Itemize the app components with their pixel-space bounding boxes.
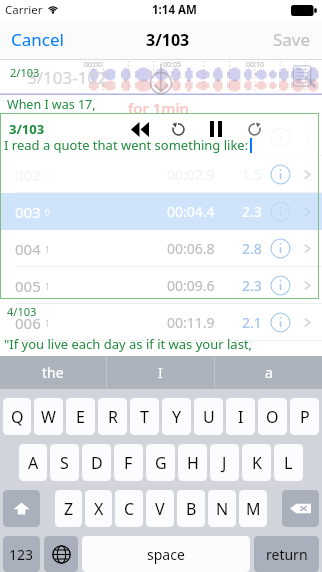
staticText: Cancel bbox=[11, 28, 64, 51]
staticText: D bbox=[91, 452, 103, 474]
button[interactable]: 006 bbox=[0, 304, 322, 341]
staticText: return bbox=[266, 545, 308, 564]
staticText: X bbox=[94, 498, 104, 520]
staticText: R bbox=[108, 406, 118, 428]
staticText: 2/103 bbox=[10, 65, 40, 80]
button[interactable]: W bbox=[34, 398, 63, 435]
button[interactable]: H bbox=[178, 444, 207, 481]
staticText: W bbox=[41, 406, 56, 428]
button[interactable]: L bbox=[274, 444, 303, 481]
staticText: 2.1 bbox=[242, 313, 262, 332]
button[interactable]: Shift bbox=[3, 490, 40, 527]
button[interactable]: 005 bbox=[0, 267, 322, 304]
staticText: 006 bbox=[15, 313, 41, 333]
button[interactable]: B bbox=[177, 490, 205, 527]
staticText: N bbox=[216, 498, 229, 520]
staticText: O bbox=[266, 406, 279, 428]
staticText: I read a quote that went something like: bbox=[4, 136, 249, 154]
staticText: 00:02.9 bbox=[167, 165, 215, 184]
button[interactable]: 123 bbox=[3, 536, 40, 572]
button[interactable]: Cancel bbox=[9, 22, 66, 57]
staticText: Q bbox=[11, 406, 24, 428]
button[interactable]: M bbox=[239, 490, 267, 527]
button[interactable]: Rewind bbox=[129, 118, 151, 140]
button[interactable]: the bbox=[0, 356, 106, 389]
button[interactable]: a bbox=[215, 356, 322, 389]
staticText: 003 bbox=[15, 202, 41, 222]
staticText: 005 bbox=[15, 276, 41, 296]
staticText: When I was 17, bbox=[7, 96, 96, 112]
staticText: 00:11.9 bbox=[167, 313, 215, 332]
button[interactable]: Z bbox=[55, 490, 82, 527]
staticText: M bbox=[246, 498, 261, 520]
staticText: the bbox=[42, 363, 64, 382]
staticText: I bbox=[158, 363, 163, 382]
button[interactable]: I bbox=[226, 398, 255, 435]
button[interactable]: Q bbox=[3, 398, 31, 435]
staticText: 002 bbox=[15, 165, 41, 185]
button[interactable]: Undo bbox=[167, 118, 189, 140]
staticText: 123 bbox=[9, 545, 34, 564]
button[interactable]: 001 bbox=[0, 119, 322, 156]
staticText: U bbox=[203, 406, 215, 428]
button[interactable]: J bbox=[210, 444, 239, 481]
staticText: 4/103 bbox=[7, 304, 37, 319]
button[interactable]: A bbox=[19, 444, 47, 481]
staticText: "If you live each day as if it was your … bbox=[4, 335, 253, 352]
button[interactable]: 002 bbox=[0, 156, 322, 193]
button[interactable]: Edit transcript bbox=[292, 65, 316, 89]
button[interactable]: E bbox=[66, 398, 95, 435]
staticText: Carrier bbox=[5, 2, 43, 18]
button[interactable]: I bbox=[107, 356, 214, 389]
staticText: 0 bbox=[45, 207, 50, 218]
button[interactable]: Y bbox=[162, 398, 191, 435]
button[interactable]: N bbox=[208, 490, 236, 527]
other: Playhead bbox=[145, 62, 177, 94]
staticText: 00:09.6 bbox=[167, 276, 215, 295]
button[interactable]: U bbox=[194, 398, 223, 435]
staticText: 1:14 AM bbox=[152, 2, 197, 18]
button[interactable]: T bbox=[130, 398, 159, 435]
button[interactable]: S bbox=[50, 444, 79, 481]
staticText: F bbox=[124, 452, 133, 474]
staticText: 1 bbox=[45, 244, 50, 255]
button[interactable]: return bbox=[254, 536, 319, 572]
staticText: 00:05 bbox=[163, 60, 181, 70]
button[interactable]: D bbox=[82, 444, 111, 481]
button[interactable]: G bbox=[146, 444, 175, 481]
button[interactable]: Change keyboard bbox=[44, 536, 78, 572]
staticText: 1 bbox=[45, 318, 50, 329]
button[interactable]: F bbox=[114, 444, 143, 481]
button[interactable]: Redo bbox=[243, 118, 265, 140]
staticText: J bbox=[222, 452, 227, 474]
button[interactable]: O bbox=[258, 398, 287, 435]
staticText: 1.5 bbox=[242, 165, 262, 184]
button[interactable]: 003 bbox=[0, 193, 322, 230]
button[interactable]: C bbox=[115, 490, 143, 527]
staticText: 2.3 bbox=[242, 202, 262, 221]
button[interactable]: V bbox=[146, 490, 174, 527]
staticText: B bbox=[186, 498, 197, 520]
button[interactable]: 004 bbox=[0, 230, 322, 267]
staticText: G bbox=[155, 452, 167, 474]
button[interactable]: Save bbox=[271, 22, 313, 57]
staticText: T bbox=[140, 406, 149, 428]
button[interactable]: Pause bbox=[205, 118, 227, 140]
button[interactable]: P bbox=[290, 398, 319, 435]
staticText: 004 bbox=[15, 239, 41, 259]
button[interactable]: space bbox=[82, 536, 250, 572]
button[interactable]: X bbox=[85, 490, 112, 527]
staticText: 2.8 bbox=[242, 239, 262, 258]
staticText: L bbox=[284, 452, 293, 474]
button[interactable]: R bbox=[98, 398, 127, 435]
button[interactable]: Backspace bbox=[282, 490, 319, 527]
staticText: 00:00 bbox=[84, 60, 102, 70]
staticText: 00:00.0 bbox=[167, 128, 215, 147]
button[interactable]: K bbox=[242, 444, 271, 481]
staticText: A bbox=[28, 452, 39, 474]
staticText: V bbox=[155, 498, 165, 520]
staticText: C bbox=[124, 498, 135, 520]
staticText: 2.3 bbox=[242, 276, 262, 295]
staticText: 1 bbox=[45, 281, 50, 292]
